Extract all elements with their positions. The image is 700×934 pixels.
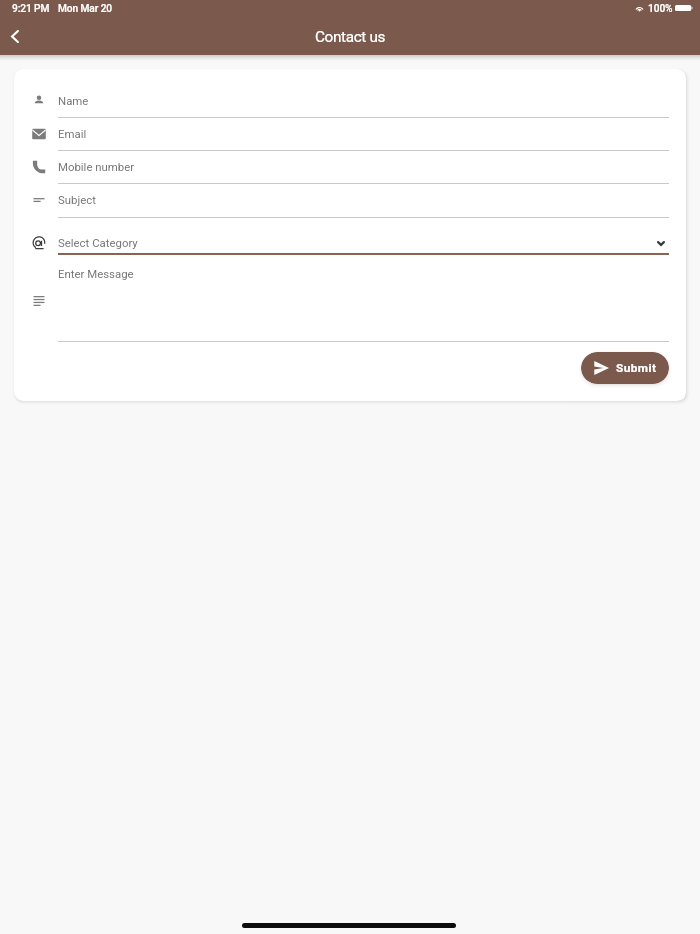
staticText: 100% bbox=[648, 3, 673, 15]
button[interactable]: Select Category bbox=[14, 229, 686, 259]
staticText: Name bbox=[58, 94, 89, 107]
staticText: Subject bbox=[58, 193, 96, 206]
staticText: Contact us bbox=[315, 28, 386, 46]
staticText: Submit bbox=[616, 361, 657, 375]
button[interactable] bbox=[14, 186, 686, 216]
button[interactable] bbox=[14, 87, 686, 117]
staticText: Mon Mar 20 bbox=[58, 3, 113, 15]
button[interactable]: Back bbox=[1, 21, 29, 51]
staticText: Mobile number bbox=[58, 160, 135, 173]
button[interactable]: Enter Message bbox=[14, 262, 686, 338]
button[interactable] bbox=[14, 153, 686, 183]
staticText: Email bbox=[58, 127, 87, 140]
staticText: 9:21 PM bbox=[12, 3, 50, 15]
button[interactable]: Submit bbox=[581, 352, 669, 384]
button[interactable] bbox=[14, 120, 686, 150]
staticText: Enter Message bbox=[58, 267, 134, 280]
staticText: Select Category bbox=[58, 236, 138, 249]
